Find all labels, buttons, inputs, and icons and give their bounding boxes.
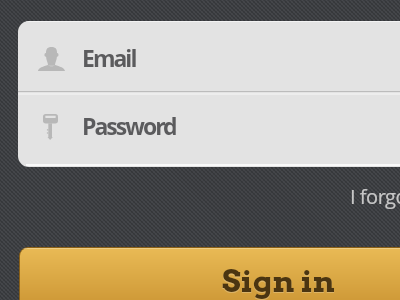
button[interactable] (18, 93, 400, 166)
button[interactable]: Sign in (19, 247, 400, 300)
button[interactable] (18, 21, 400, 167)
staticText: Password (82, 110, 176, 141)
staticText: Sign in (222, 262, 335, 299)
button[interactable] (18, 21, 400, 91)
button[interactable]: I forgot my password (350, 183, 400, 210)
staticText: Sign in (222, 263, 335, 300)
staticText: Email (82, 42, 136, 73)
